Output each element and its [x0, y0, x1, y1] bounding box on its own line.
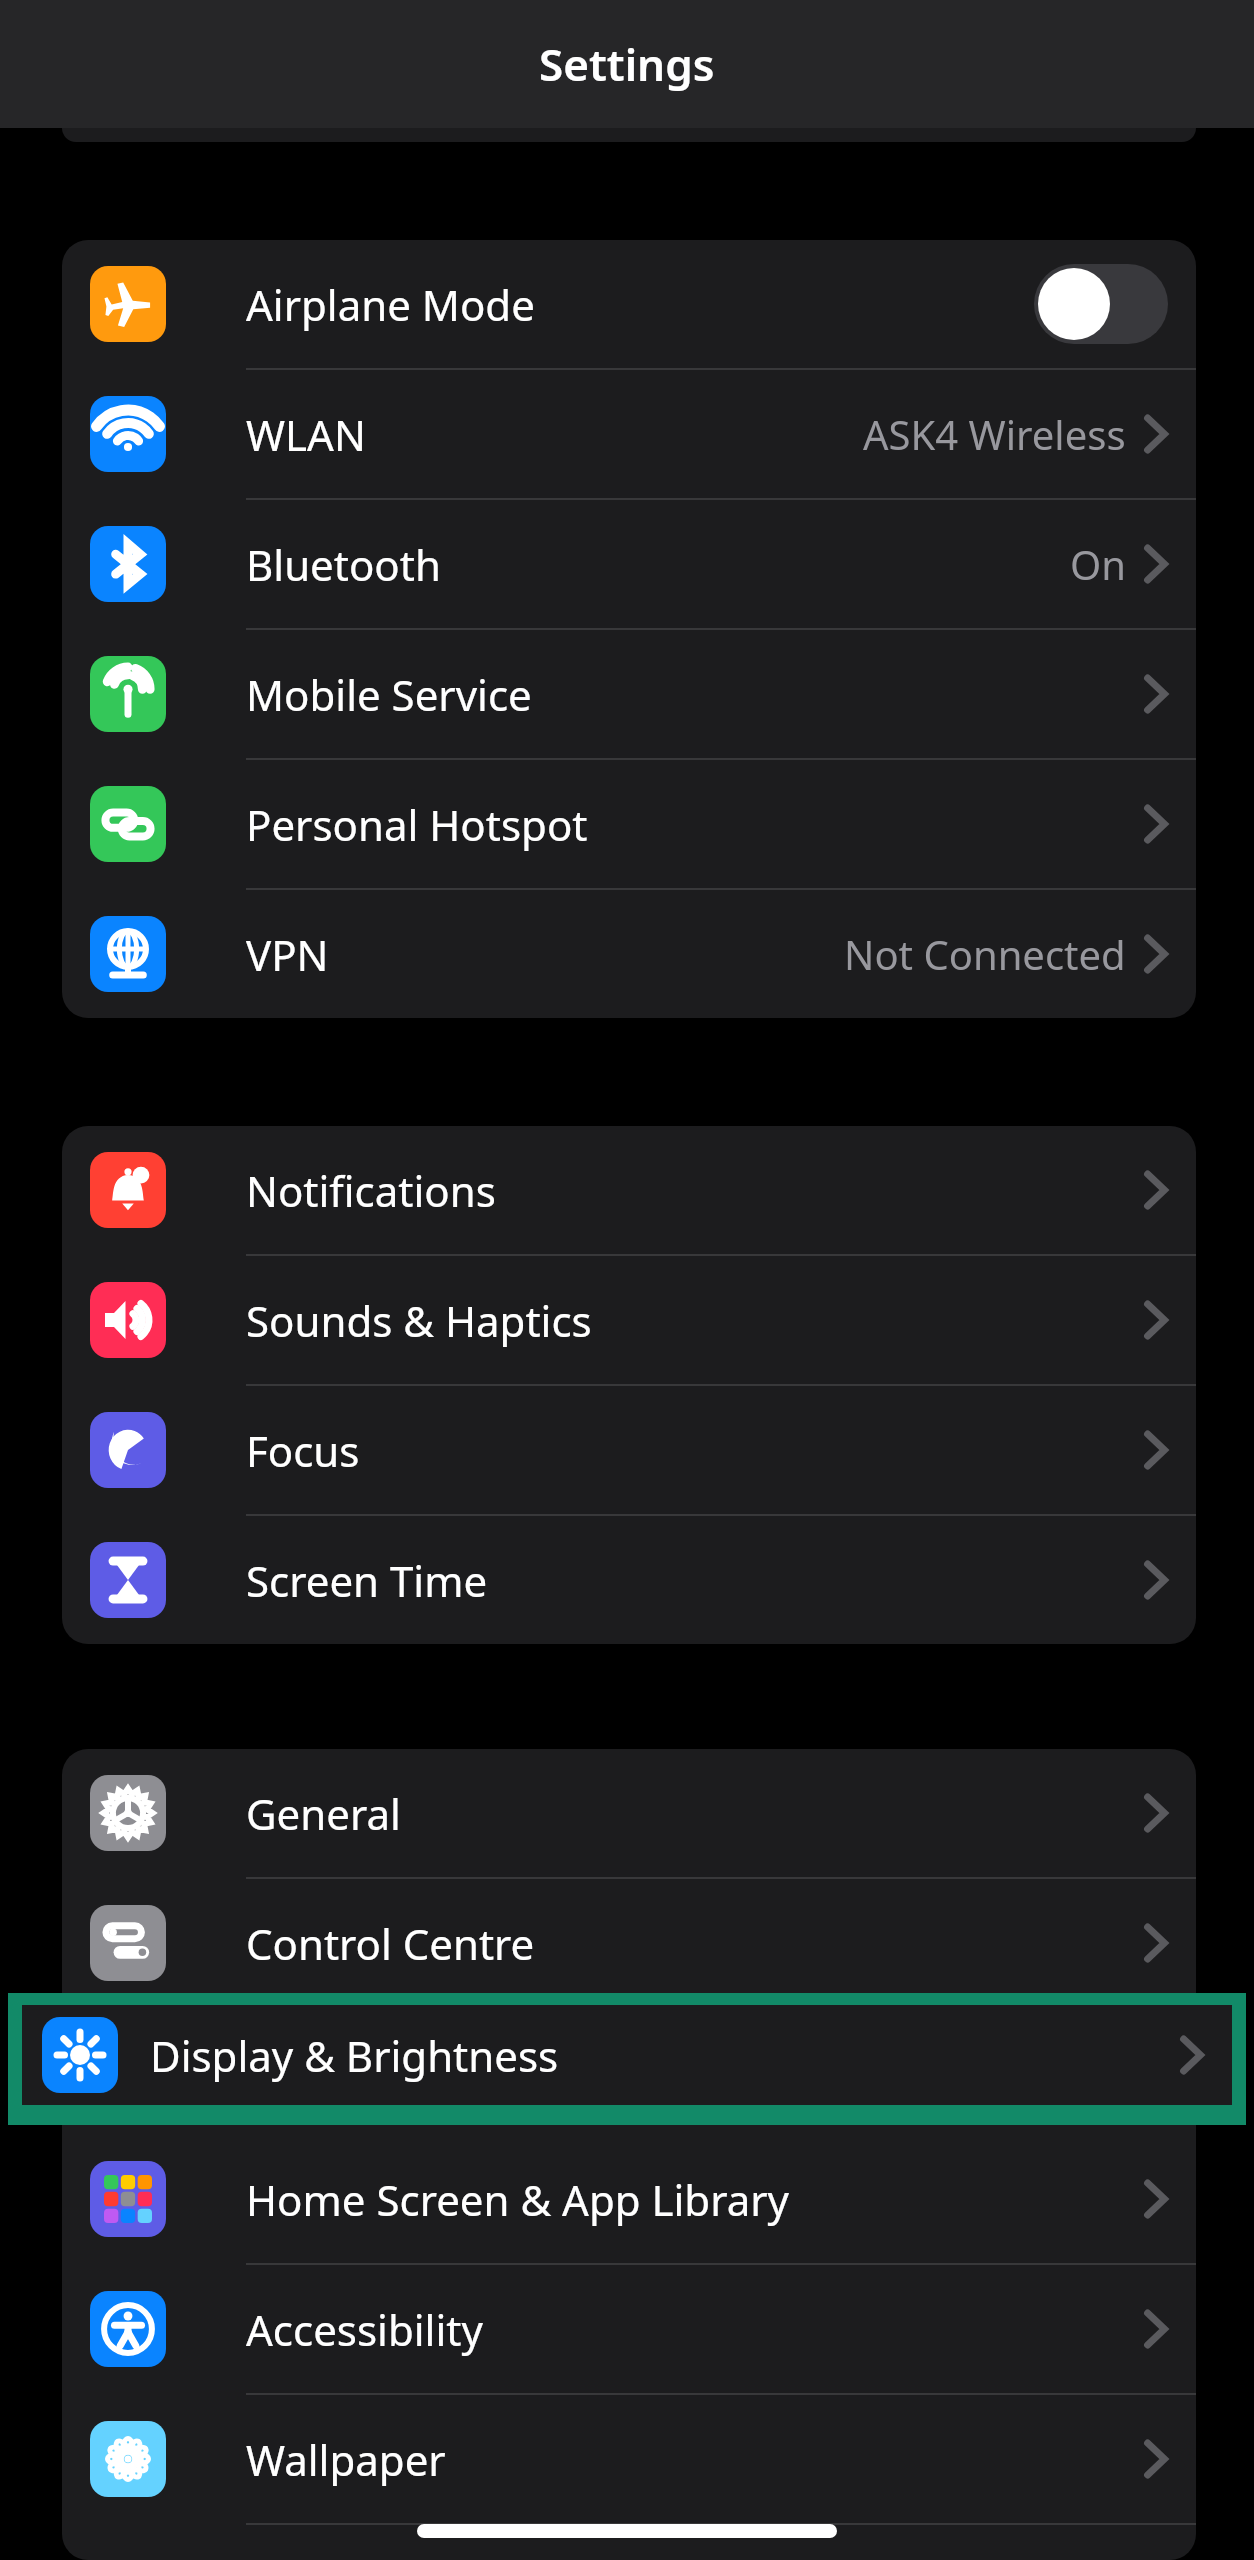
- staticText: Notifications: [246, 1162, 496, 1219]
- button[interactable]: General: [62, 1749, 1196, 1877]
- button[interactable]: Home Screen & App Library: [62, 2135, 1196, 2263]
- staticText: Bluetooth: [246, 536, 441, 593]
- staticText: Mobile Service: [246, 666, 532, 723]
- staticText: Not Connected: [844, 927, 1126, 981]
- button[interactable]: Wallpaper: [62, 2395, 1196, 2523]
- staticText: ASK4 Wireless: [863, 407, 1126, 461]
- staticText: Settings: [539, 34, 715, 94]
- staticText: Accessibility: [246, 2301, 483, 2358]
- staticText: Wallpaper: [246, 2431, 446, 2488]
- staticText: VPN: [246, 926, 329, 983]
- staticText: Airplane Mode: [246, 276, 535, 333]
- staticText: Control Centre: [246, 1915, 535, 1972]
- staticText: On: [1070, 537, 1126, 591]
- button[interactable]: Sounds & Haptics: [62, 1256, 1196, 1384]
- button[interactable]: VPN: [62, 890, 1196, 1018]
- button[interactable]: WLAN: [62, 370, 1196, 498]
- button[interactable]: Screen Time: [62, 1516, 1196, 1644]
- staticText: Home Screen & App Library: [246, 2171, 789, 2228]
- button[interactable]: Notifications: [62, 1126, 1196, 1254]
- button[interactable]: Accessibility: [62, 2265, 1196, 2393]
- staticText: Screen Time: [246, 1552, 488, 1609]
- staticText: General: [246, 1785, 401, 1842]
- staticText: Sounds & Haptics: [246, 1292, 592, 1349]
- button[interactable]: Airplane Mode toggle: [1034, 264, 1168, 344]
- button[interactable]: Mobile Service: [62, 630, 1196, 758]
- staticText: WLAN: [246, 406, 366, 463]
- button[interactable]: Control Centre: [62, 1879, 1196, 2007]
- staticText: Display & Brightness: [150, 2027, 559, 2084]
- button[interactable]: Bluetooth: [62, 500, 1196, 628]
- button[interactable]: Display & Brightness: [22, 2005, 1232, 2105]
- staticText: Focus: [246, 1422, 360, 1479]
- staticText: Personal Hotspot: [246, 796, 588, 853]
- button[interactable]: Personal Hotspot: [62, 760, 1196, 888]
- button[interactable]: Airplane Mode: [62, 240, 1196, 368]
- button[interactable]: Focus: [62, 1386, 1196, 1514]
